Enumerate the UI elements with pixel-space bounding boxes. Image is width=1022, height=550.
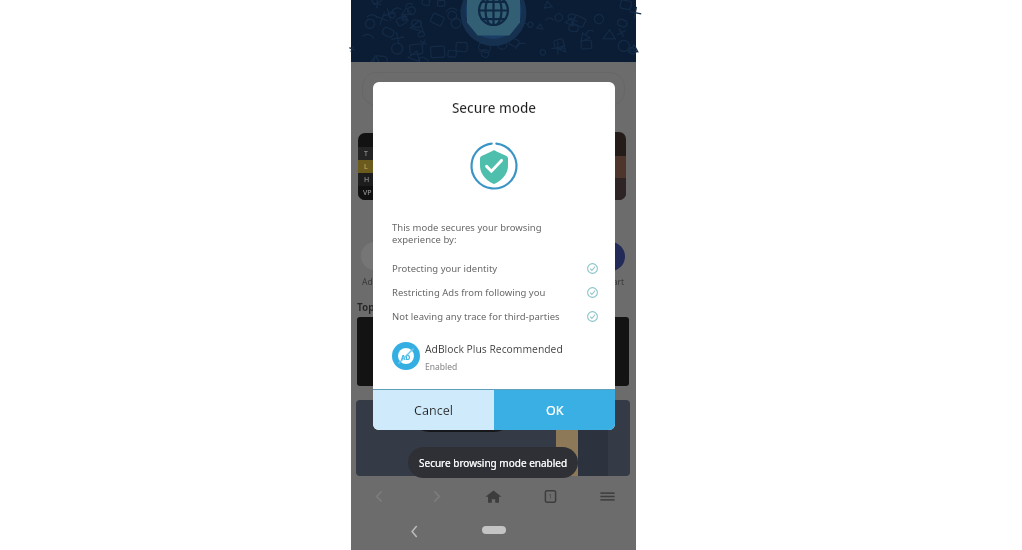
button[interactable]: Home (465, 480, 522, 512)
button[interactable]: Home gesture (482, 526, 506, 534)
staticText: Enabled (425, 361, 458, 373)
staticText: L (364, 162, 368, 172)
staticText: This mode secures your browsing experien… (392, 221, 542, 246)
staticText: OK (546, 402, 564, 419)
staticText: AD (401, 353, 411, 362)
button[interactable]: Menu (579, 480, 636, 512)
staticText: H (364, 175, 370, 185)
button[interactable]: Cancel (373, 390, 494, 430)
staticText: Walmart (590, 276, 624, 288)
staticText: AdBlock Plus Recommended (425, 342, 563, 356)
button[interactable]: OK (494, 390, 615, 430)
staticText: 1 (548, 491, 553, 501)
staticText: Cancel (414, 402, 453, 419)
staticText: Not leaving any trace for third-parties (392, 310, 560, 323)
staticText: VP (363, 188, 372, 198)
staticText: T (364, 149, 368, 159)
staticText: Ads (362, 276, 377, 288)
button[interactable]: System back (404, 521, 424, 541)
staticText: Top sites (357, 300, 401, 314)
staticText: Restricting Ads from following you (392, 286, 546, 299)
staticText: Secure mode (373, 99, 615, 117)
staticText: Protecting your identity (392, 262, 498, 275)
staticText: Secure browsing mode enabled (419, 456, 568, 470)
button[interactable]: Tabs (522, 480, 579, 512)
